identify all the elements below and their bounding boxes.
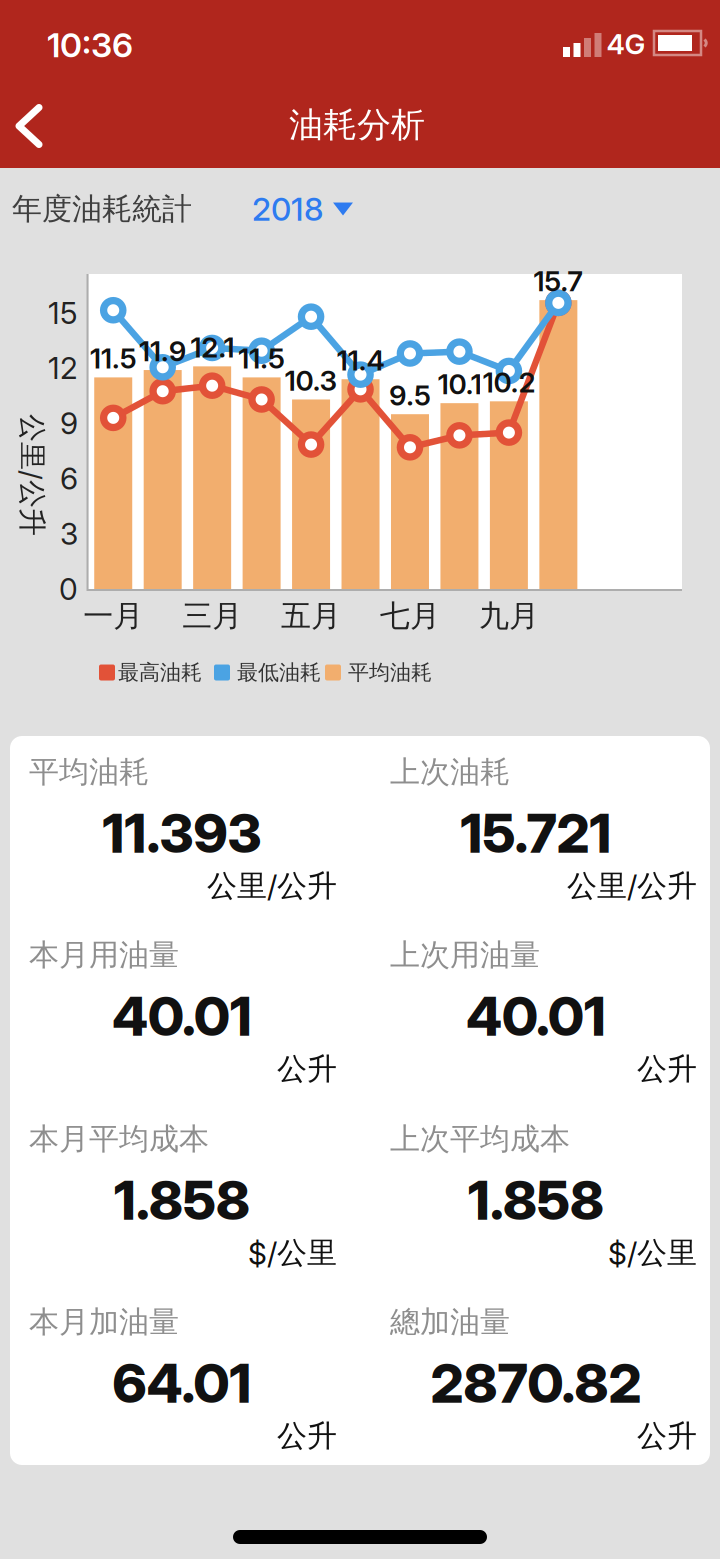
staticText: 最高油耗 — [118, 659, 202, 686]
staticText: 三月 — [182, 597, 242, 635]
staticText: 64.01 — [112, 1350, 251, 1416]
staticText: 15 — [48, 295, 78, 331]
staticText: 總加油量 — [390, 1303, 510, 1341]
staticText: 11.5 — [238, 341, 285, 375]
staticText: 上次平均成本 — [390, 1120, 570, 1158]
staticText: 12.1 — [190, 330, 234, 364]
staticText: 9.5 — [389, 378, 431, 412]
staticText: 3 — [60, 516, 78, 552]
staticText: 七月 — [380, 597, 440, 635]
staticText: 6 — [60, 460, 78, 497]
staticText: 10.3 — [285, 363, 338, 397]
staticText: 本月平均成本 — [29, 1120, 209, 1158]
staticText: 公升 — [637, 1050, 697, 1088]
staticText: 2018 — [252, 190, 323, 228]
staticText: 11.9 — [139, 334, 187, 368]
staticText: 10.1 — [437, 367, 481, 401]
staticText: 11.5 — [90, 341, 137, 375]
staticText: 15.721 — [460, 800, 611, 866]
staticText: 15.7 — [533, 264, 583, 298]
staticText: 上次油耗 — [390, 753, 510, 791]
staticText: 0 — [59, 571, 78, 607]
staticText: 五月 — [281, 597, 341, 635]
staticText: 九月 — [479, 597, 539, 635]
staticText: 10:36 — [47, 24, 133, 65]
staticText: 公升 — [277, 1050, 337, 1088]
staticText: 1.858 — [114, 1167, 250, 1233]
staticText: 12 — [48, 350, 78, 386]
staticText: 油耗分析 — [289, 104, 425, 146]
staticText: $/公里 — [608, 1234, 697, 1272]
staticText: 4G — [606, 27, 645, 61]
staticText: 2870.82 — [430, 1350, 641, 1416]
staticText: 40.01 — [112, 983, 252, 1049]
staticText: 平均油耗 — [29, 753, 149, 791]
staticText: 10.2 — [482, 365, 535, 399]
staticText: 1.858 — [468, 1167, 604, 1233]
staticText: 平均油耗 — [348, 659, 432, 686]
staticText: 11.4 — [336, 343, 384, 377]
staticText: 40.01 — [466, 983, 606, 1049]
staticText: 公里/公升 — [0, 457, 93, 493]
staticText: 公里/公升 — [567, 867, 697, 905]
staticText: 最低油耗 — [237, 659, 321, 686]
staticText: $/公里 — [248, 1234, 337, 1272]
staticText: 本月用油量 — [29, 936, 179, 974]
staticText: 公升 — [277, 1417, 337, 1455]
staticText: 11.393 — [102, 800, 261, 866]
staticText: 年度油耗統計 — [12, 190, 192, 228]
staticText: 9 — [60, 405, 78, 442]
button[interactable]: Back — [2, 91, 62, 161]
staticText: 本月加油量 — [29, 1303, 179, 1341]
button[interactable]: 2018 — [252, 185, 382, 233]
staticText: 一月 — [83, 597, 143, 635]
staticText: 公升 — [637, 1417, 697, 1455]
staticText: 公里/公升 — [207, 867, 337, 905]
staticText: 上次用油量 — [390, 936, 540, 974]
